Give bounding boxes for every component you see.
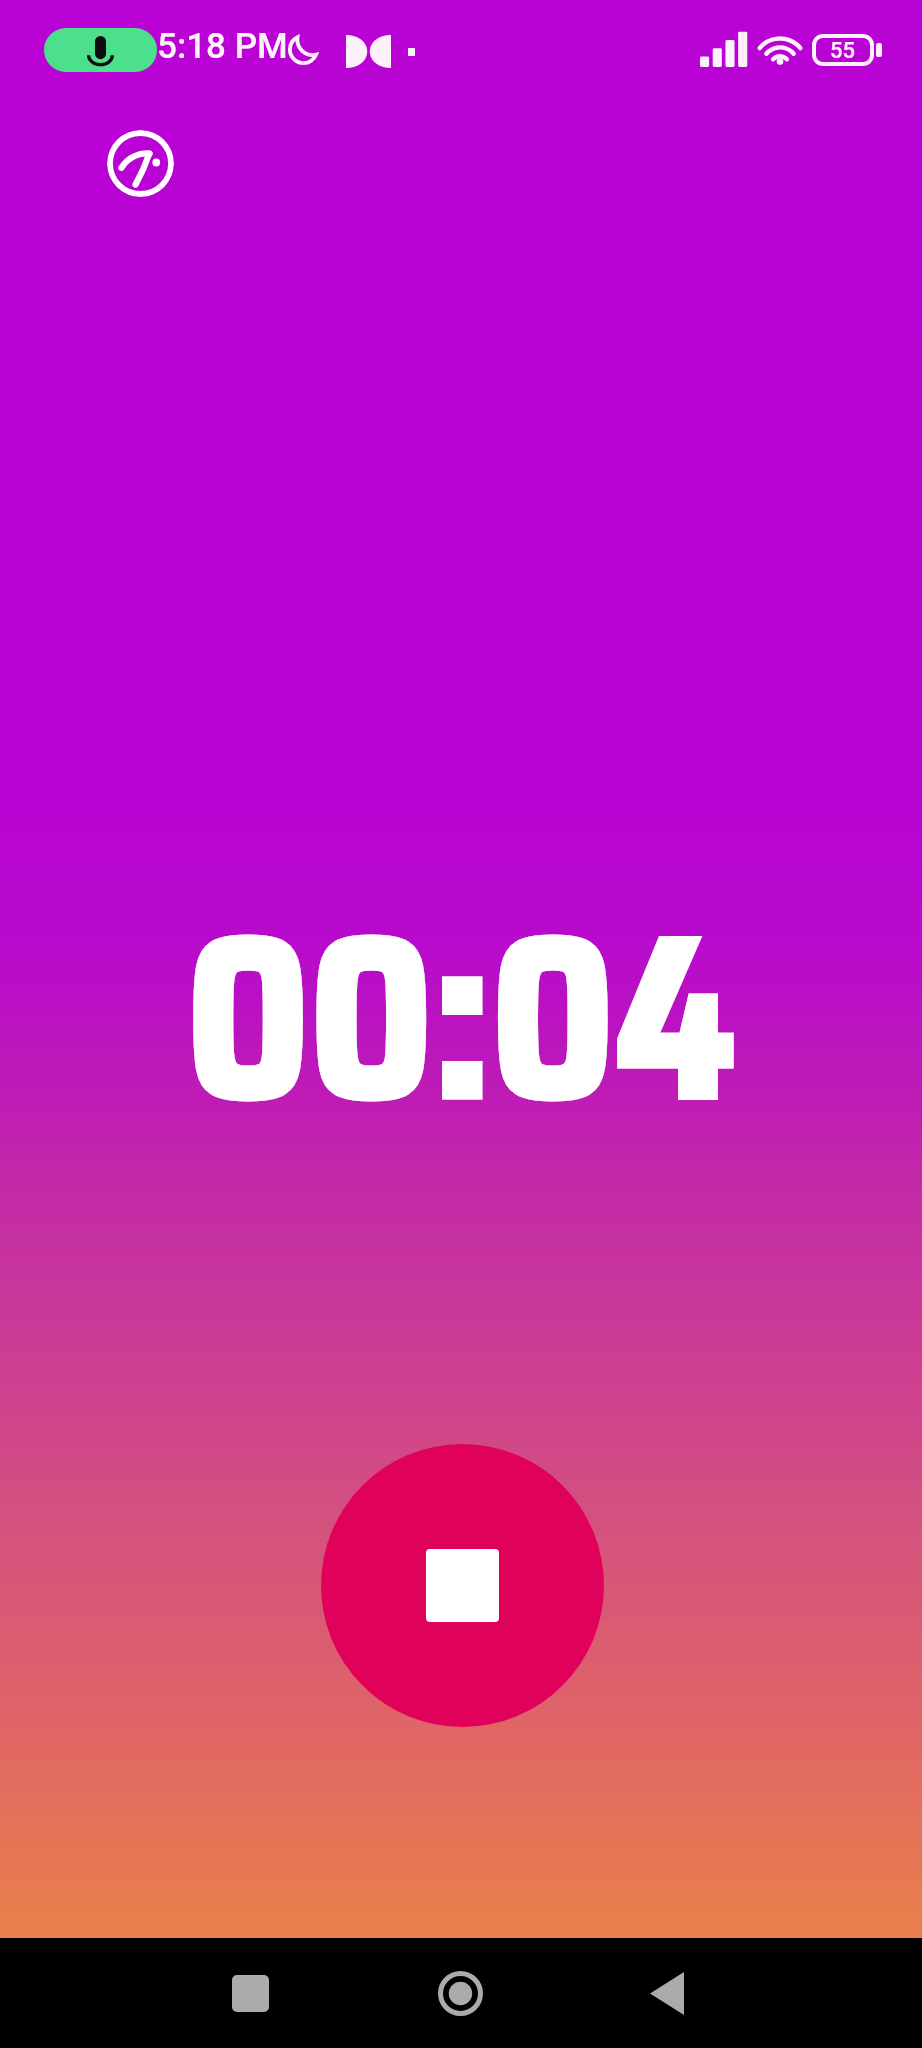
button[interactable]: Microphone in use [44,28,157,72]
other: Do not disturb [288,34,319,65]
staticText: 5:18 PM [157,26,288,67]
button[interactable]: Home [405,1938,515,2048]
button[interactable]: Back [612,1938,722,2048]
button[interactable]: Stop recording [321,1444,604,1727]
staticText: 00:04 [25,838,897,1195]
button[interactable]: App logo [107,130,174,197]
staticText: 55 [830,38,856,62]
button[interactable]: Recents [195,1938,305,2048]
